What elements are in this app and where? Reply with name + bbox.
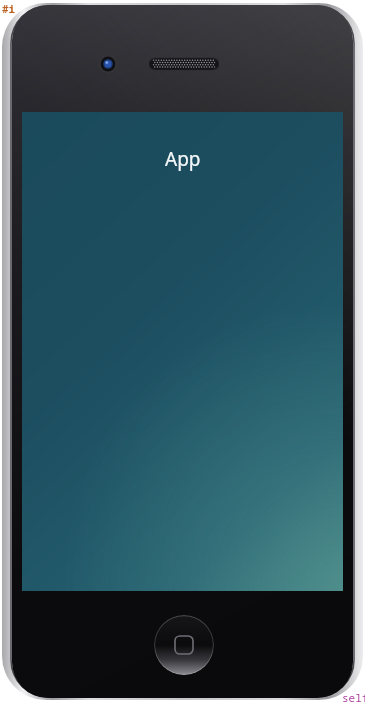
- button[interactable]: App: [22, 112, 343, 591]
- staticText: self: [342, 690, 365, 705]
- staticText: App: [165, 146, 201, 172]
- button[interactable]: Home: [154, 615, 214, 675]
- staticText: #i: [2, 1, 16, 16]
- other: Front camera: [99, 55, 117, 73]
